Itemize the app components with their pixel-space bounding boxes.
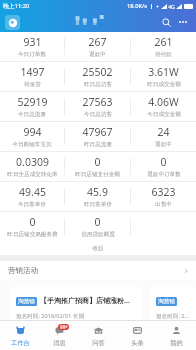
staticText: 0 <box>29 215 36 229</box>
button[interactable]: 0 <box>0 212 64 241</box>
staticText: 47967 <box>82 125 113 139</box>
button[interactable]: 3.61W <box>131 62 196 91</box>
staticText: 今日总访客 <box>84 111 112 118</box>
staticText: 45.9 <box>87 185 108 199</box>
button[interactable]: More options <box>176 15 190 29</box>
staticText: 昨日店铺支付金额 <box>75 171 120 178</box>
staticText: 晚上11:20 <box>3 2 30 10</box>
staticText: 退款中 <box>89 51 106 58</box>
staticText: 18.0K/s <box>126 2 147 10</box>
button[interactable]: Search <box>159 15 173 29</box>
staticText: 今日购物车宝贝 <box>12 141 52 148</box>
button[interactable]: 52919 <box>0 92 64 121</box>
button[interactable]: 994 <box>0 122 64 151</box>
staticText: 消息 <box>53 339 66 347</box>
button[interactable]: 267 <box>65 32 130 61</box>
button[interactable]: 我的 <box>157 321 196 350</box>
staticText: 1497 <box>20 65 45 79</box>
staticText: 待发货 <box>24 81 41 88</box>
button[interactable]: 淘营销 <box>149 287 196 320</box>
staticText: 退款中订单数 <box>147 171 181 178</box>
staticText: 退款中 <box>155 141 172 148</box>
staticText: 25502 <box>82 65 113 79</box>
staticText: 昨日总流量 <box>84 141 112 148</box>
staticText: 昨日成交金额 <box>147 81 181 88</box>
staticText: 收起 <box>92 245 104 252</box>
staticText: 0 <box>94 215 101 229</box>
staticText: 今日客单价 <box>18 201 46 208</box>
button[interactable]: Shop avatar <box>5 15 20 30</box>
button[interactable]: 45.9 <box>65 182 130 211</box>
staticText: 0 <box>160 155 167 169</box>
button[interactable]: 99+ <box>40 321 79 350</box>
staticText: 报名时间: 2018/02/01-长期 <box>16 312 85 320</box>
staticText: 头条 <box>131 339 144 347</box>
button[interactable]: 问答 <box>79 321 118 350</box>
staticText: 今日总流量 <box>18 111 46 118</box>
button[interactable]: 4.06W <box>131 92 196 121</box>
staticText: 994 <box>23 125 42 139</box>
staticText: 淘营销 <box>158 298 175 305</box>
button[interactable]: 49.45 <box>0 182 64 211</box>
staticText: 昨日总访客 <box>84 81 112 88</box>
staticText: 淘营销 <box>18 298 35 305</box>
staticText: 931 <box>23 35 42 49</box>
staticText: 267 <box>88 35 107 49</box>
button[interactable]: 47967 <box>65 122 130 151</box>
staticText: 昨日客单价 <box>84 201 112 208</box>
staticText: 【手淘推广招商】店铺涨粉… <box>40 296 130 306</box>
button[interactable]: 27563 <box>65 92 130 121</box>
button[interactable]: 0 <box>131 152 196 181</box>
button[interactable]: 261 <box>131 32 196 61</box>
staticText: 我的 <box>170 339 183 347</box>
staticText: 出售中 <box>155 201 172 208</box>
staticText: 昨日全店成交转化率 <box>7 171 58 178</box>
staticText: 信用贷款额度 <box>81 231 115 238</box>
button[interactable]: 收起 <box>0 241 196 255</box>
staticText: 0 <box>94 155 101 169</box>
staticText: 报名时间: 2018/02/01-长期 <box>156 312 191 320</box>
button[interactable]: 931 <box>0 32 64 61</box>
staticText: 工作台 <box>11 339 30 347</box>
button[interactable]: 6323 <box>131 182 196 211</box>
button[interactable]: 0 <box>65 152 130 181</box>
staticText: 今日成交金额 <box>147 111 181 118</box>
button[interactable]: 工作台 <box>0 321 40 350</box>
staticText: 24 <box>157 125 170 139</box>
staticText: 营销活动 <box>8 266 38 275</box>
staticText: 49.45 <box>19 185 46 199</box>
staticText: 待付款 <box>155 51 172 58</box>
staticText: 0.0309 <box>16 155 49 169</box>
button[interactable]: 淘营销 <box>9 287 143 320</box>
button[interactable]: 25502 <box>65 62 130 91</box>
button[interactable]: 0 <box>65 212 130 241</box>
staticText: 4G <box>168 3 175 10</box>
staticText: 27563 <box>82 95 113 109</box>
button[interactable]: 24 <box>131 122 196 151</box>
staticText: 4.06W <box>148 95 179 109</box>
button[interactable]: 头条 <box>118 321 157 350</box>
staticText: 3.61W <box>148 65 179 79</box>
button[interactable]: 1497 <box>0 62 64 91</box>
button[interactable]: 营销活动 <box>0 261 196 280</box>
staticText: 99+ <box>60 324 68 330</box>
button[interactable]: 0.0309 <box>0 152 64 181</box>
staticText: 问答 <box>92 339 105 347</box>
staticText: 261 <box>154 35 173 49</box>
staticText: 今日订单数 <box>18 51 46 58</box>
staticText: 52919 <box>17 95 48 109</box>
staticText: 昨日店铺交易服务费 <box>7 231 58 238</box>
staticText: 6323 <box>151 185 176 199</box>
